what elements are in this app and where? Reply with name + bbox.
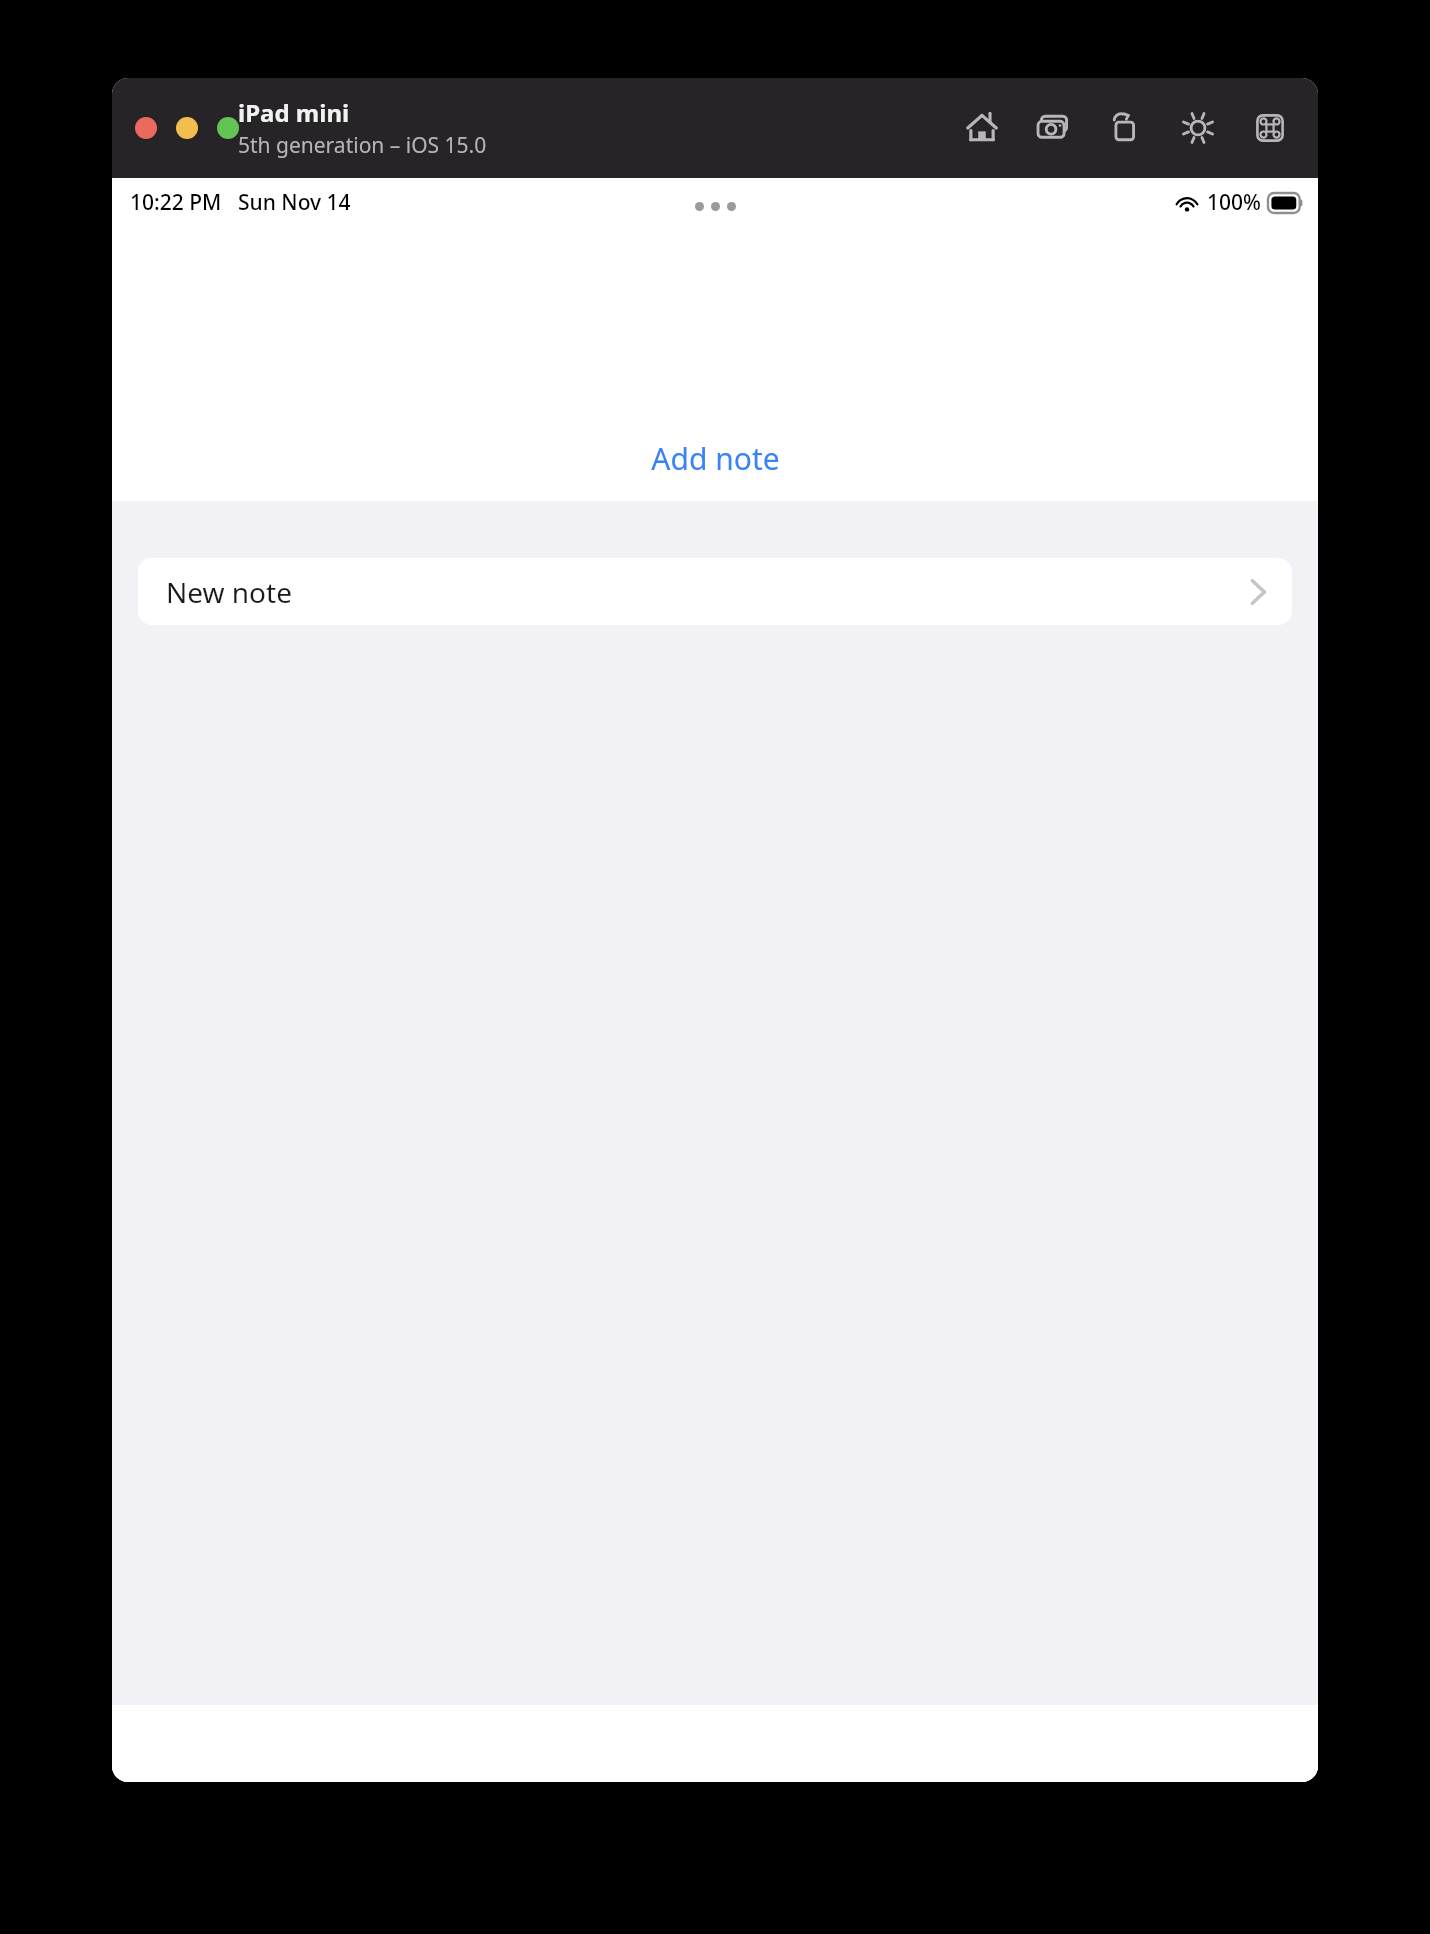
button[interactable]: Rotate	[1100, 102, 1152, 154]
staticText: New note	[166, 573, 292, 611]
button[interactable]: Keyboard shortcuts	[1244, 102, 1296, 154]
button[interactable]: Multitasking controls	[689, 196, 742, 217]
staticText: 10:22 PM	[130, 188, 222, 217]
button[interactable]: Minimize	[176, 117, 198, 139]
staticText: Sun Nov 14	[238, 188, 351, 217]
button[interactable]: Screenshot	[1028, 102, 1080, 154]
button[interactable]: Home	[956, 102, 1008, 154]
staticText: 5th generation – iOS 15.0	[238, 131, 487, 160]
staticText: 100%	[1207, 188, 1261, 217]
button[interactable]: New note	[138, 558, 1292, 625]
button[interactable]: Add note	[635, 430, 796, 487]
button[interactable]: Close	[135, 117, 157, 139]
button[interactable]: Appearance	[1172, 102, 1224, 154]
button[interactable]: Zoom	[217, 117, 239, 139]
staticText: Add note	[651, 438, 780, 479]
staticText: iPad mini	[238, 96, 350, 129]
